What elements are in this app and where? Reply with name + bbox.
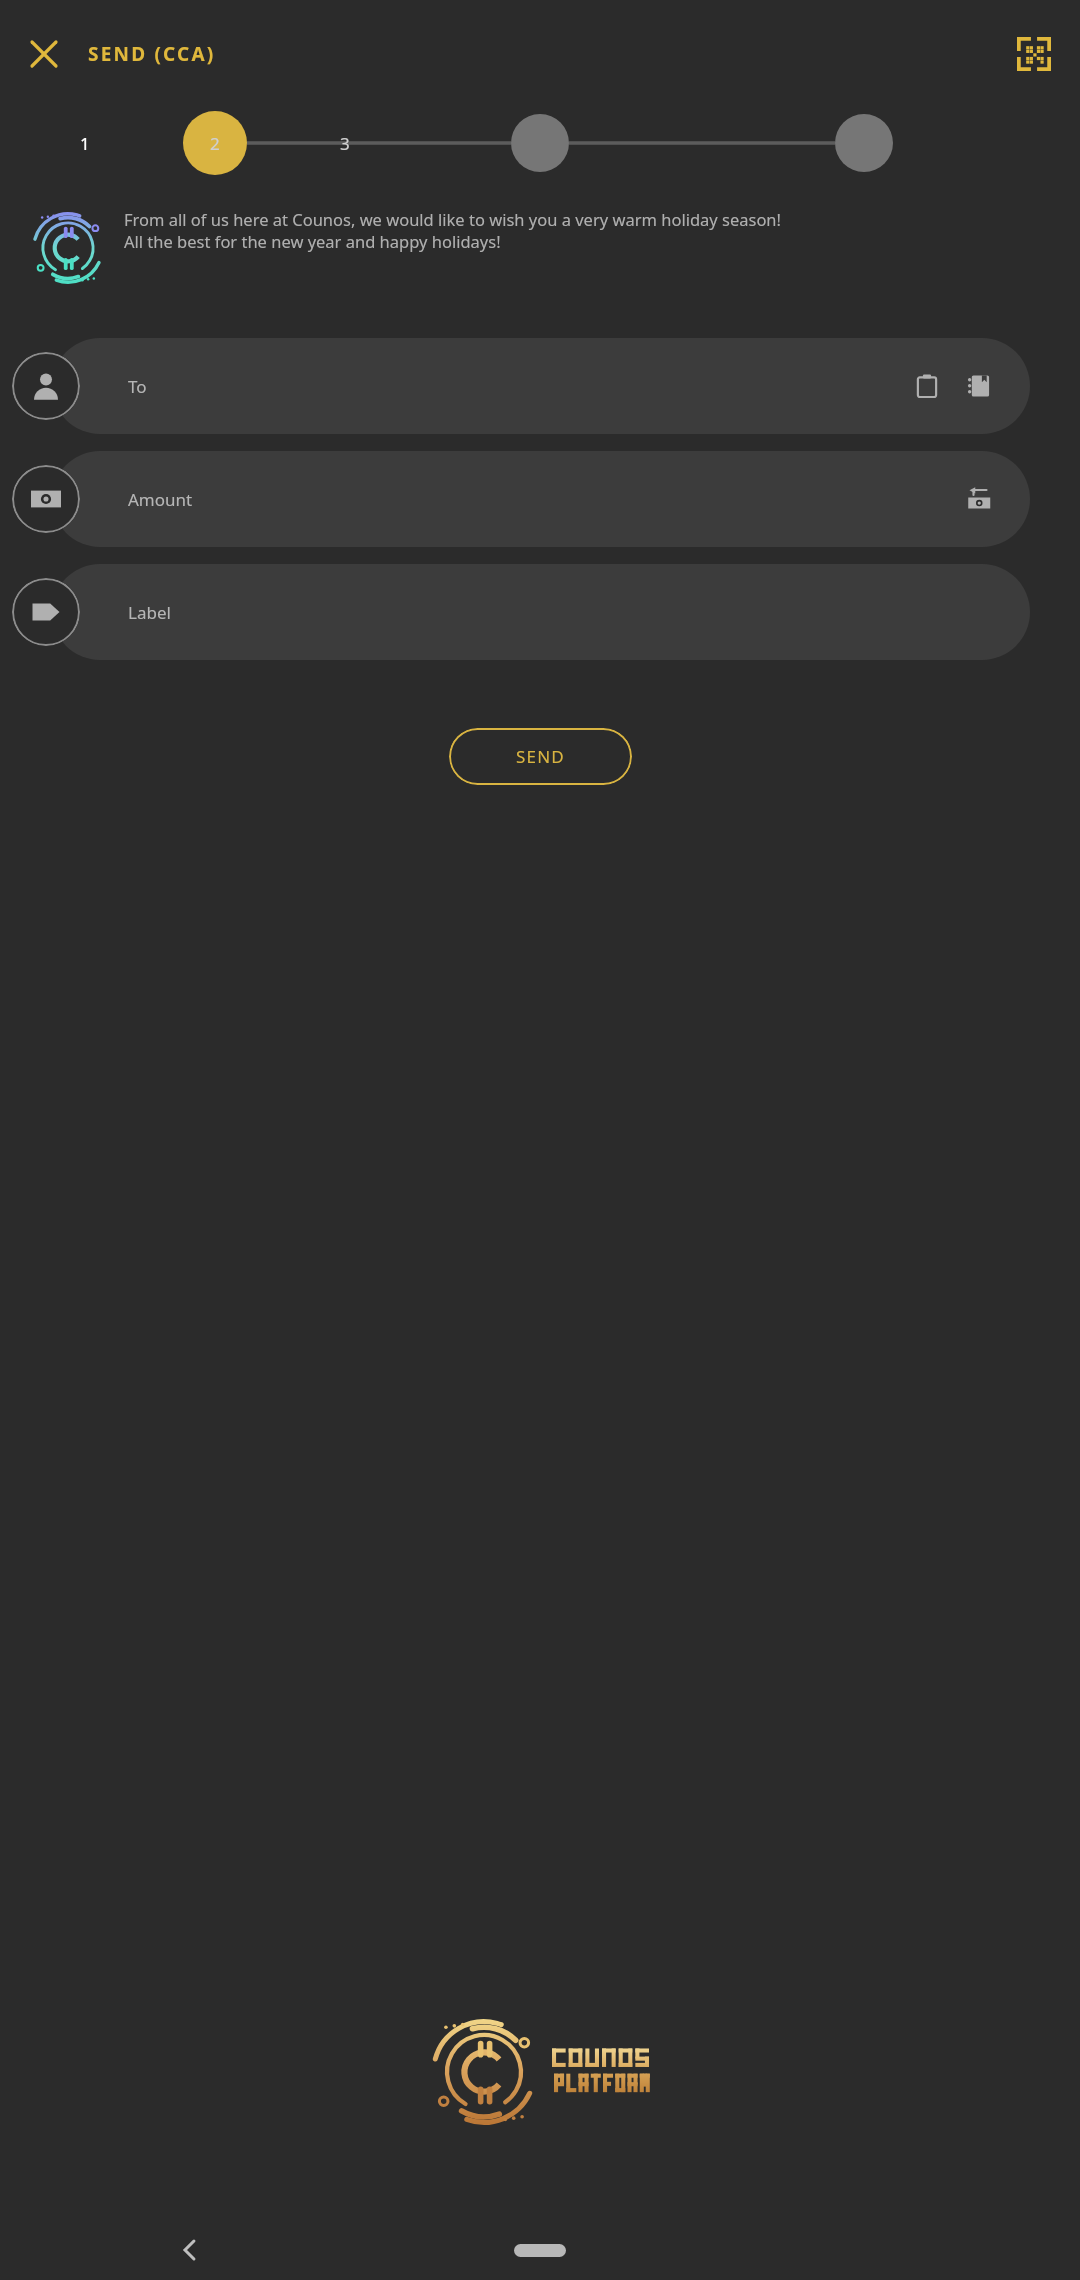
button[interactable]: Close [18,28,70,80]
staticText: 3 [340,132,350,155]
staticText: 1 [80,132,90,155]
button[interactable]: Address book [956,363,1002,409]
staticText: From all of us here at Counos, we would … [124,208,781,230]
staticText: 2 [210,132,220,155]
button[interactable]: Paste from clipboard [904,363,950,409]
button[interactable]: Convert currency [956,476,1002,522]
staticText: SEND (CCA) [88,41,216,67]
button[interactable]: Label [52,564,1030,660]
button[interactable]: Home [514,2244,566,2257]
staticText: Label [128,601,171,624]
staticText: All the best for the new year and happy … [124,230,501,252]
button[interactable]: Scan QR code [1008,28,1060,80]
button[interactable] [12,352,80,420]
button[interactable] [12,465,80,533]
staticText: Amount [128,488,193,511]
staticText: To [128,375,147,398]
button[interactable]: To [52,338,1030,434]
button[interactable] [12,578,80,646]
button[interactable]: Amount [52,451,1030,547]
button[interactable]: Back [168,2228,212,2272]
button[interactable]: SEND [449,728,632,785]
staticText: SEND [516,745,565,768]
